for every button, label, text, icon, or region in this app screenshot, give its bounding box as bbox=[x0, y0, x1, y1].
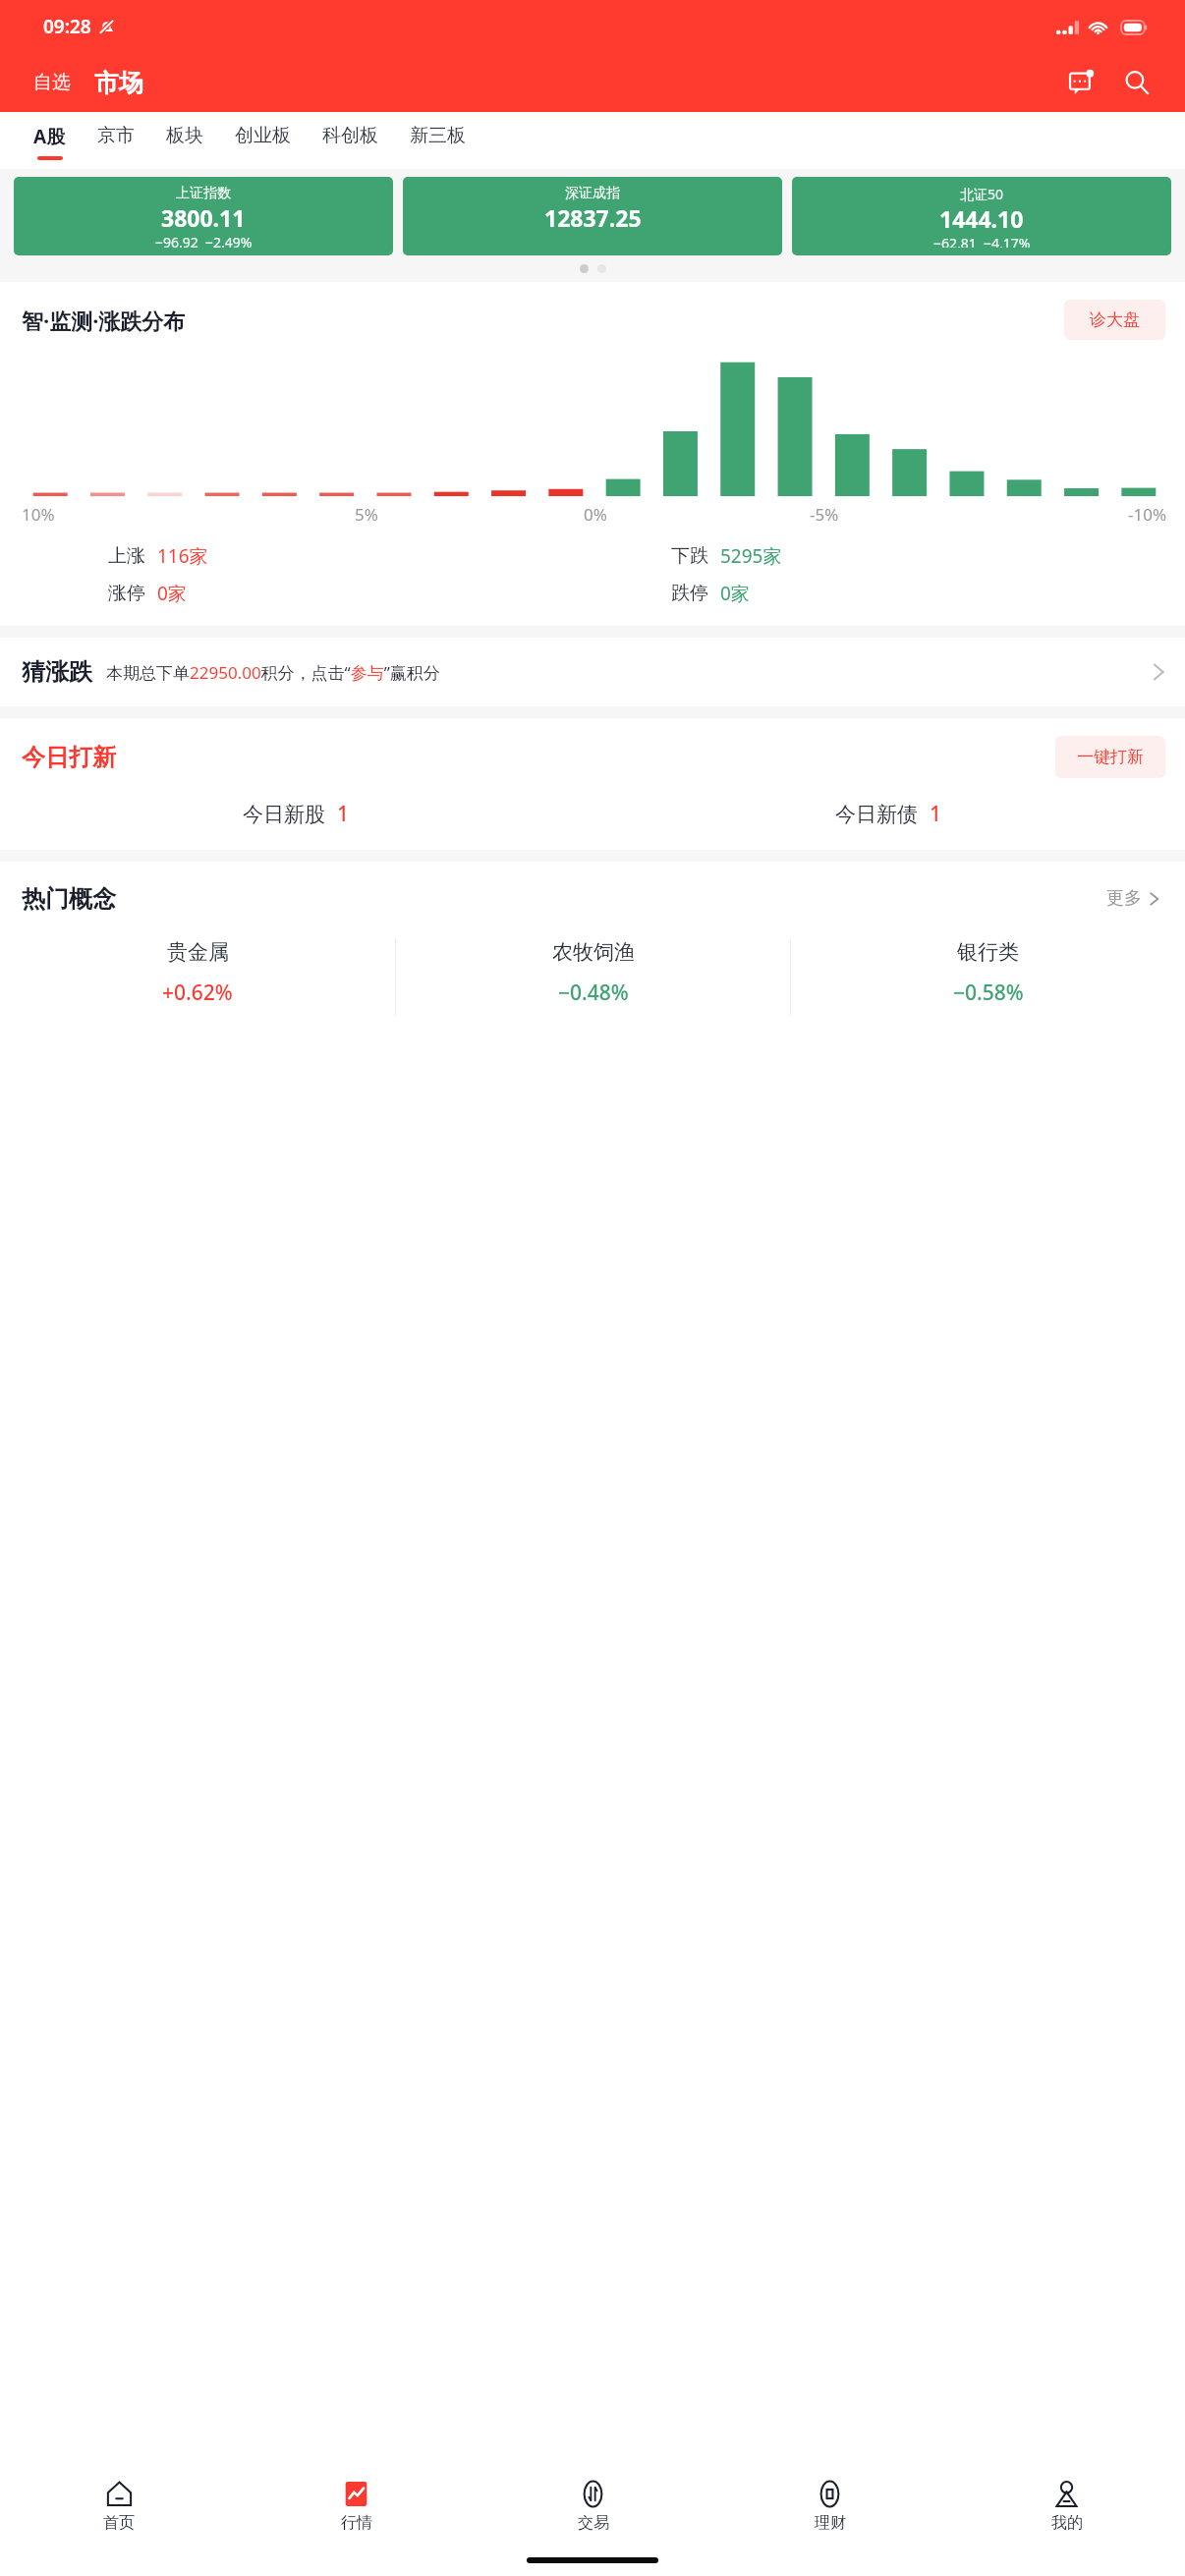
staticText: 贵金属 bbox=[167, 939, 229, 965]
staticText: 今日新债 bbox=[835, 802, 918, 827]
staticText: +0.62% bbox=[162, 979, 233, 1007]
button[interactable]: 我的 bbox=[948, 2468, 1185, 2545]
button[interactable]: 猜涨跌 bbox=[0, 638, 1185, 706]
staticText: 热门概念 bbox=[22, 884, 116, 914]
staticText: 今日新股 bbox=[243, 802, 325, 827]
staticText: 1444.10 bbox=[939, 203, 1024, 234]
staticText: -10% bbox=[1128, 503, 1167, 526]
staticText: 北证50 bbox=[960, 185, 1004, 203]
button[interactable]: 科创板 bbox=[307, 112, 394, 169]
button[interactable]: 诊大盘 bbox=[1064, 300, 1165, 340]
staticText: 交易 bbox=[578, 2513, 609, 2533]
button[interactable]: 更多 bbox=[1100, 881, 1165, 916]
staticText: 下跌 bbox=[671, 544, 708, 568]
staticText: 5% bbox=[355, 503, 378, 526]
button[interactable]: 交易 bbox=[475, 2468, 711, 2545]
staticText: 自选 bbox=[33, 71, 71, 94]
button[interactable]: 一键打新 bbox=[1055, 736, 1165, 778]
staticText: 今日打新 bbox=[22, 743, 116, 772]
button[interactable]: 创业板 bbox=[219, 112, 307, 169]
staticText: A股 bbox=[33, 124, 66, 149]
staticText: 智·监测·涨跌分布 bbox=[22, 306, 186, 335]
button[interactable]: 板块 bbox=[150, 112, 219, 169]
staticText: 3800.11 bbox=[161, 202, 246, 233]
button[interactable]: 自选 bbox=[28, 67, 77, 98]
button[interactable]: 今日新股 bbox=[0, 800, 592, 828]
staticText: 猜涨跌 bbox=[22, 657, 92, 687]
staticText: 京市 bbox=[97, 124, 135, 147]
button[interactable]: 北证50 bbox=[792, 177, 1171, 255]
staticText: −62.81 −4.17% bbox=[933, 234, 1031, 248]
button[interactable]: 深证成指 bbox=[403, 177, 782, 255]
staticText: 深证成指 bbox=[565, 185, 620, 202]
button[interactable]: 理财 bbox=[711, 2468, 948, 2545]
staticText: 诊大盘 bbox=[1090, 309, 1140, 330]
button[interactable]: 京市 bbox=[82, 112, 150, 169]
staticText: 本期总下单22950.00积分，点击“参与”赢积分 bbox=[106, 661, 440, 684]
staticText: −0.48% bbox=[558, 979, 629, 1007]
staticText: 科创板 bbox=[322, 124, 378, 147]
staticText: 涨停 bbox=[108, 582, 145, 605]
staticText: 09:28 bbox=[43, 14, 91, 39]
staticText: 一键打新 bbox=[1077, 747, 1144, 767]
button[interactable]: 上证指数 bbox=[14, 177, 393, 255]
staticText: 上涨 bbox=[108, 544, 145, 568]
staticText: 新三板 bbox=[410, 124, 466, 147]
staticText: 理财 bbox=[815, 2513, 846, 2533]
staticText: 更多 bbox=[1106, 887, 1142, 910]
staticText: 1 bbox=[930, 800, 942, 828]
button[interactable]: 今日新债 bbox=[592, 800, 1185, 828]
staticText: 0家 bbox=[720, 581, 750, 606]
staticText: -5% bbox=[810, 503, 839, 526]
button[interactable]: 农牧饲渔 bbox=[396, 939, 790, 1016]
staticText: −96.92 −2.49% bbox=[155, 233, 253, 248]
staticText: 1 bbox=[337, 800, 350, 828]
button[interactable]: 首页 bbox=[0, 2468, 238, 2545]
button[interactable]: 银行类 bbox=[791, 939, 1185, 1016]
staticText: 5295家 bbox=[720, 543, 782, 569]
staticText: 0家 bbox=[157, 581, 187, 606]
staticText: −0.58% bbox=[953, 979, 1024, 1007]
staticText: 10% bbox=[22, 503, 55, 526]
staticText: 市场 bbox=[94, 68, 143, 98]
staticText: 首页 bbox=[103, 2513, 135, 2533]
button[interactable]: 市场 bbox=[90, 68, 147, 98]
staticText: 板块 bbox=[166, 124, 203, 147]
button[interactable]: 贵金属 bbox=[0, 939, 395, 1016]
staticText: 创业板 bbox=[235, 124, 291, 147]
staticText: 银行类 bbox=[957, 939, 1019, 965]
button[interactable]: 行情 bbox=[238, 2468, 475, 2545]
staticText: 116家 bbox=[157, 543, 208, 569]
staticText: 农牧饲渔 bbox=[552, 939, 635, 965]
staticText: 12837.25 bbox=[544, 202, 642, 233]
button[interactable]: Messages bbox=[1059, 60, 1104, 105]
staticText: 跌停 bbox=[671, 582, 708, 605]
staticText: 行情 bbox=[341, 2513, 372, 2533]
staticText: 上证指数 bbox=[176, 185, 231, 202]
button[interactable]: 新三板 bbox=[394, 112, 481, 169]
button[interactable]: Search bbox=[1114, 60, 1159, 105]
staticText: 0% bbox=[584, 503, 607, 526]
staticText: 我的 bbox=[1051, 2513, 1083, 2533]
button[interactable]: A股 bbox=[18, 112, 82, 169]
